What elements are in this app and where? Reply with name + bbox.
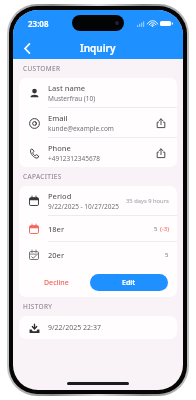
staticText: 23:08 (28, 18, 49, 29)
button[interactable]: 9/22/2025 22:37 (19, 316, 177, 339)
button[interactable]: 18er (19, 216, 177, 241)
staticText: Phone (48, 143, 71, 153)
staticText: 9/22/2025 22:37 (48, 323, 101, 333)
staticText: +4912312345678 (48, 154, 101, 163)
button[interactable]: Period (19, 186, 177, 215)
staticText: 18er (48, 224, 65, 234)
button[interactable]: Edit (90, 274, 168, 291)
button[interactable]: Decline (28, 274, 84, 291)
button[interactable]: Share phone (153, 145, 169, 161)
staticText: Musterfrau (10) (48, 94, 96, 103)
staticText: Edit (122, 278, 136, 288)
staticText: CUSTOMER (23, 64, 61, 73)
button[interactable]: Last name (19, 78, 177, 107)
staticText: 5 (165, 251, 169, 259)
staticText: Last name (48, 83, 86, 93)
staticText: HISTORY (23, 302, 53, 311)
button[interactable]: 20er (19, 242, 177, 267)
staticText: Period (48, 191, 72, 201)
button[interactable]: Email (19, 108, 177, 137)
staticText: 5 (154, 225, 158, 233)
staticText: 20er (48, 250, 65, 260)
button[interactable]: Share email (153, 115, 169, 131)
staticText: (-3) (160, 225, 169, 233)
staticText: Email (48, 113, 68, 123)
button[interactable]: Phone (19, 138, 177, 167)
staticText: Inquiry (80, 41, 116, 55)
staticText: CAPACITIES (23, 172, 62, 181)
staticText: 35 days 9 hours (126, 197, 169, 205)
button[interactable]: Back (17, 38, 37, 58)
staticText: kunde@example.com (48, 124, 114, 133)
staticText: 9/22/2025 - 10/27/2025 (48, 202, 119, 211)
staticText: Decline (44, 278, 69, 288)
